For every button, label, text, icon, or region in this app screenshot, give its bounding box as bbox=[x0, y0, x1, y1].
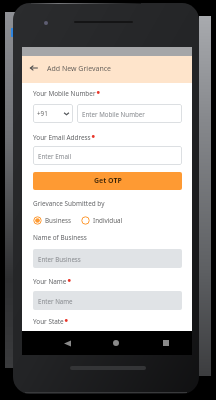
button[interactable]: Enter Name bbox=[33, 291, 182, 310]
staticText: Your Mobile Number bbox=[33, 89, 96, 98]
button[interactable]: +91 bbox=[33, 104, 73, 123]
button[interactable]: Enter Business bbox=[33, 249, 182, 268]
staticText: Your Name bbox=[33, 277, 67, 286]
staticText: Enter Email bbox=[38, 152, 72, 160]
button[interactable]: Get OTP bbox=[33, 172, 182, 190]
button[interactable]: Enter Mobile Number bbox=[77, 104, 182, 123]
button[interactable]: Enter Email bbox=[33, 146, 182, 165]
staticText: Your State bbox=[33, 317, 64, 326]
button[interactable]: Home bbox=[108, 335, 124, 351]
staticText: Enter Mobile Number bbox=[82, 110, 145, 118]
staticText: Your Email Address bbox=[33, 133, 91, 142]
staticText: Name of Business bbox=[33, 233, 87, 242]
button[interactable]: Back bbox=[59, 335, 75, 351]
staticText: +91 bbox=[37, 109, 48, 118]
button[interactable]: Back bbox=[27, 61, 41, 75]
button[interactable]: Business bbox=[33, 216, 72, 225]
staticText: Individual bbox=[93, 216, 123, 225]
staticText: Grievance Submitted by bbox=[33, 199, 105, 208]
button[interactable]: Individual bbox=[81, 216, 123, 225]
staticText: Get OTP bbox=[94, 176, 122, 186]
staticText: Enter Business bbox=[38, 255, 81, 263]
staticText: Enter Name bbox=[38, 297, 73, 305]
button[interactable]: Recent apps bbox=[158, 335, 174, 351]
staticText: Business bbox=[45, 216, 72, 225]
staticText: Add New Grievance bbox=[47, 64, 112, 74]
